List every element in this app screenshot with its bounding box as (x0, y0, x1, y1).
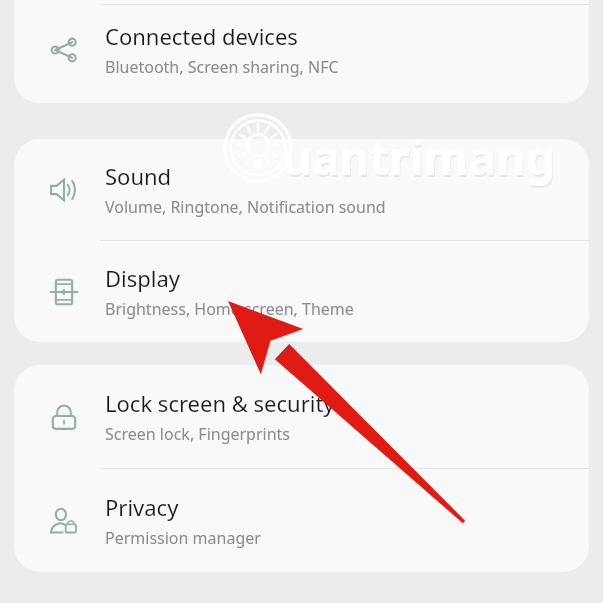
staticText: Volume, Ringtone, Notification sound (105, 196, 386, 218)
staticText: Permission manager (105, 527, 261, 549)
staticText: Screen lock, Fingerprints (105, 423, 291, 445)
staticText: uantrimang (282, 126, 556, 189)
staticText: uantrimang (283, 128, 557, 191)
other: Display (42, 270, 86, 314)
other: Connected devices (42, 28, 86, 72)
button[interactable]: Sound (14, 139, 589, 240)
button[interactable]: Lock screen and security (14, 365, 589, 468)
other: Sound (42, 168, 86, 212)
button[interactable]: Privacy (14, 469, 589, 572)
staticText: Display (105, 263, 181, 293)
staticText: Bluetooth, Screen sharing, NFC (105, 56, 339, 78)
button[interactable]: Connected devices (14, 0, 589, 99)
button[interactable]: Display (14, 241, 589, 342)
staticText: Connected devices (105, 21, 298, 51)
staticText: Brightness, Home screen, Theme (105, 298, 354, 320)
staticText: Sound (105, 161, 172, 191)
staticText: Privacy (105, 492, 179, 522)
other: Lock screen and security (42, 395, 86, 439)
other: Privacy (42, 499, 86, 543)
staticText: Lock screen & security (105, 388, 335, 418)
